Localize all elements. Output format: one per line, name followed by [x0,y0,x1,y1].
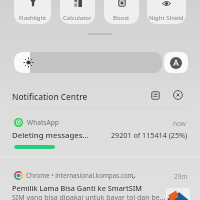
staticText: 29201 of 115414 (25%) [111,130,188,140]
button[interactable]: Clear all notifications [171,88,185,102]
button[interactable]: Flashlight [14,0,51,24]
staticText: SIM yang bisa dipakai untuk bayar tol da… [12,193,166,200]
button[interactable]: Night Shield [147,0,186,24]
staticText: Deleting messages… [12,130,89,141]
button[interactable]: WhatsApp [0,110,200,151]
button[interactable]: Chrome • internasional.kompas.com [0,153,200,200]
button[interactable]: Brightness [14,52,162,73]
staticText: 29m [174,172,188,181]
staticText: Boost [113,14,130,22]
button[interactable]: Notification settings [148,88,162,102]
staticText: Chrome • internasional.kompas.com [26,171,134,180]
staticText: Calculator [63,14,92,22]
staticText: Pemilik Lama Bisa Ganti ke SmartSIM [12,183,142,193]
staticText: Flashlight [19,14,47,22]
button[interactable]: Calculator [60,0,95,24]
button[interactable]: Auto brightness [164,52,188,73]
staticText: now [173,119,186,128]
button[interactable]: Boost [104,0,139,24]
staticText: Notification Centre [12,91,88,102]
staticText: Night Shield [149,14,184,22]
staticText: WhatsApp [27,118,59,127]
